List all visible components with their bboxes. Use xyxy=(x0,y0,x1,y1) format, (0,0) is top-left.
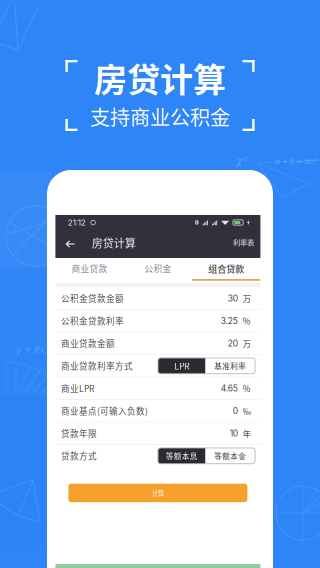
button[interactable]: 公积金 xyxy=(124,258,192,283)
button[interactable]: 等额本息 xyxy=(158,448,205,464)
staticText: 0 xyxy=(233,406,238,416)
staticText: 利率表 xyxy=(233,237,254,247)
button[interactable]: Back xyxy=(60,232,80,256)
staticText: ‰ xyxy=(243,405,251,417)
button[interactable]: LPR xyxy=(158,358,205,374)
staticText: 组合贷款 xyxy=(208,262,244,275)
staticText: 计算 xyxy=(152,488,164,498)
staticText: 商业贷款 xyxy=(72,262,108,275)
staticText: 万 xyxy=(243,337,251,349)
staticText: 万 xyxy=(243,292,251,304)
staticText: % xyxy=(243,382,251,394)
button[interactable]: 商业基点(可输入负数) xyxy=(55,400,260,422)
button[interactable]: 组合贷款 xyxy=(192,258,260,283)
staticText: 商业基点(可输入负数) xyxy=(61,405,148,417)
button[interactable]: 基准利率 xyxy=(205,358,255,374)
staticText: 年 xyxy=(243,427,251,439)
button[interactable]: 公积金贷款金额 xyxy=(55,287,260,309)
staticText: 10 xyxy=(230,428,238,438)
button[interactable]: 商业贷款金额 xyxy=(55,332,260,354)
staticText: 房贷计算 xyxy=(92,235,136,251)
button[interactable]: 等额本金 xyxy=(205,448,255,464)
staticText: 商业LPR xyxy=(61,382,94,395)
staticText: α + β = 90° xyxy=(275,157,318,166)
button[interactable]: 公积金贷款利率 xyxy=(55,310,260,332)
staticText: 公积金 xyxy=(144,262,171,275)
staticText: 20 xyxy=(228,338,238,348)
staticText: 公积金贷款金额 xyxy=(61,292,124,305)
staticText: χ² xyxy=(236,154,248,167)
staticText: 贷款方式 xyxy=(61,450,97,462)
staticText: 基准利率 xyxy=(214,360,246,371)
staticText: 支持商业公积金 xyxy=(90,102,230,131)
staticText: 房贷计算 xyxy=(94,54,226,101)
staticText: 30 xyxy=(228,293,238,303)
staticText: 贷款年限 xyxy=(61,427,97,440)
staticText: 等额本金 xyxy=(214,450,246,461)
button[interactable]: 计算 xyxy=(68,484,247,502)
staticText: 21:12 xyxy=(68,218,86,227)
button[interactable]: 商业贷款 xyxy=(55,258,124,283)
button[interactable]: 贷款年限 xyxy=(55,422,260,444)
staticText: % xyxy=(243,315,251,327)
staticText: y = f(x) xyxy=(16,345,48,355)
staticText: 商业贷款利率方式 xyxy=(61,360,133,372)
button[interactable]: 利率表 xyxy=(230,230,257,258)
staticText: 商业贷款金额 xyxy=(61,337,115,350)
staticText: 3.25 xyxy=(221,316,238,326)
staticText: LPR xyxy=(174,360,189,372)
staticText: 公积金贷款利率 xyxy=(61,315,124,327)
staticText: 等额本息 xyxy=(166,450,198,461)
button[interactable]: 商业LPR xyxy=(55,377,260,399)
staticText: 4.65 xyxy=(221,383,238,393)
